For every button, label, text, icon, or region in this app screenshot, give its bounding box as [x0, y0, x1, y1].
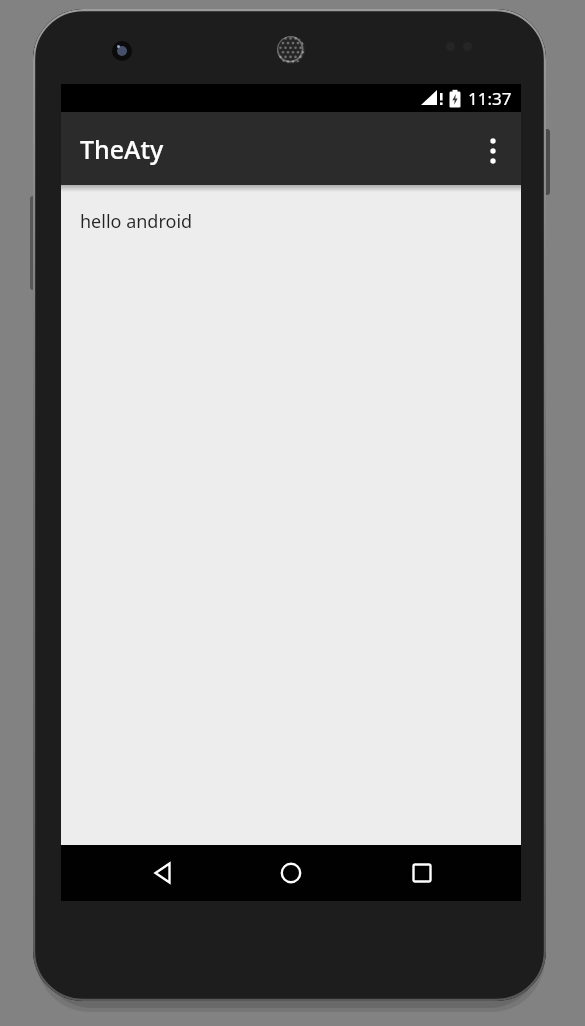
staticText: hello android	[80, 209, 193, 234]
button[interactable]	[469, 112, 517, 185]
button[interactable]	[139, 845, 187, 901]
button[interactable]	[267, 845, 315, 901]
staticText: TheAty	[80, 132, 164, 166]
staticText: 11:37	[468, 87, 512, 110]
button[interactable]	[398, 845, 446, 901]
